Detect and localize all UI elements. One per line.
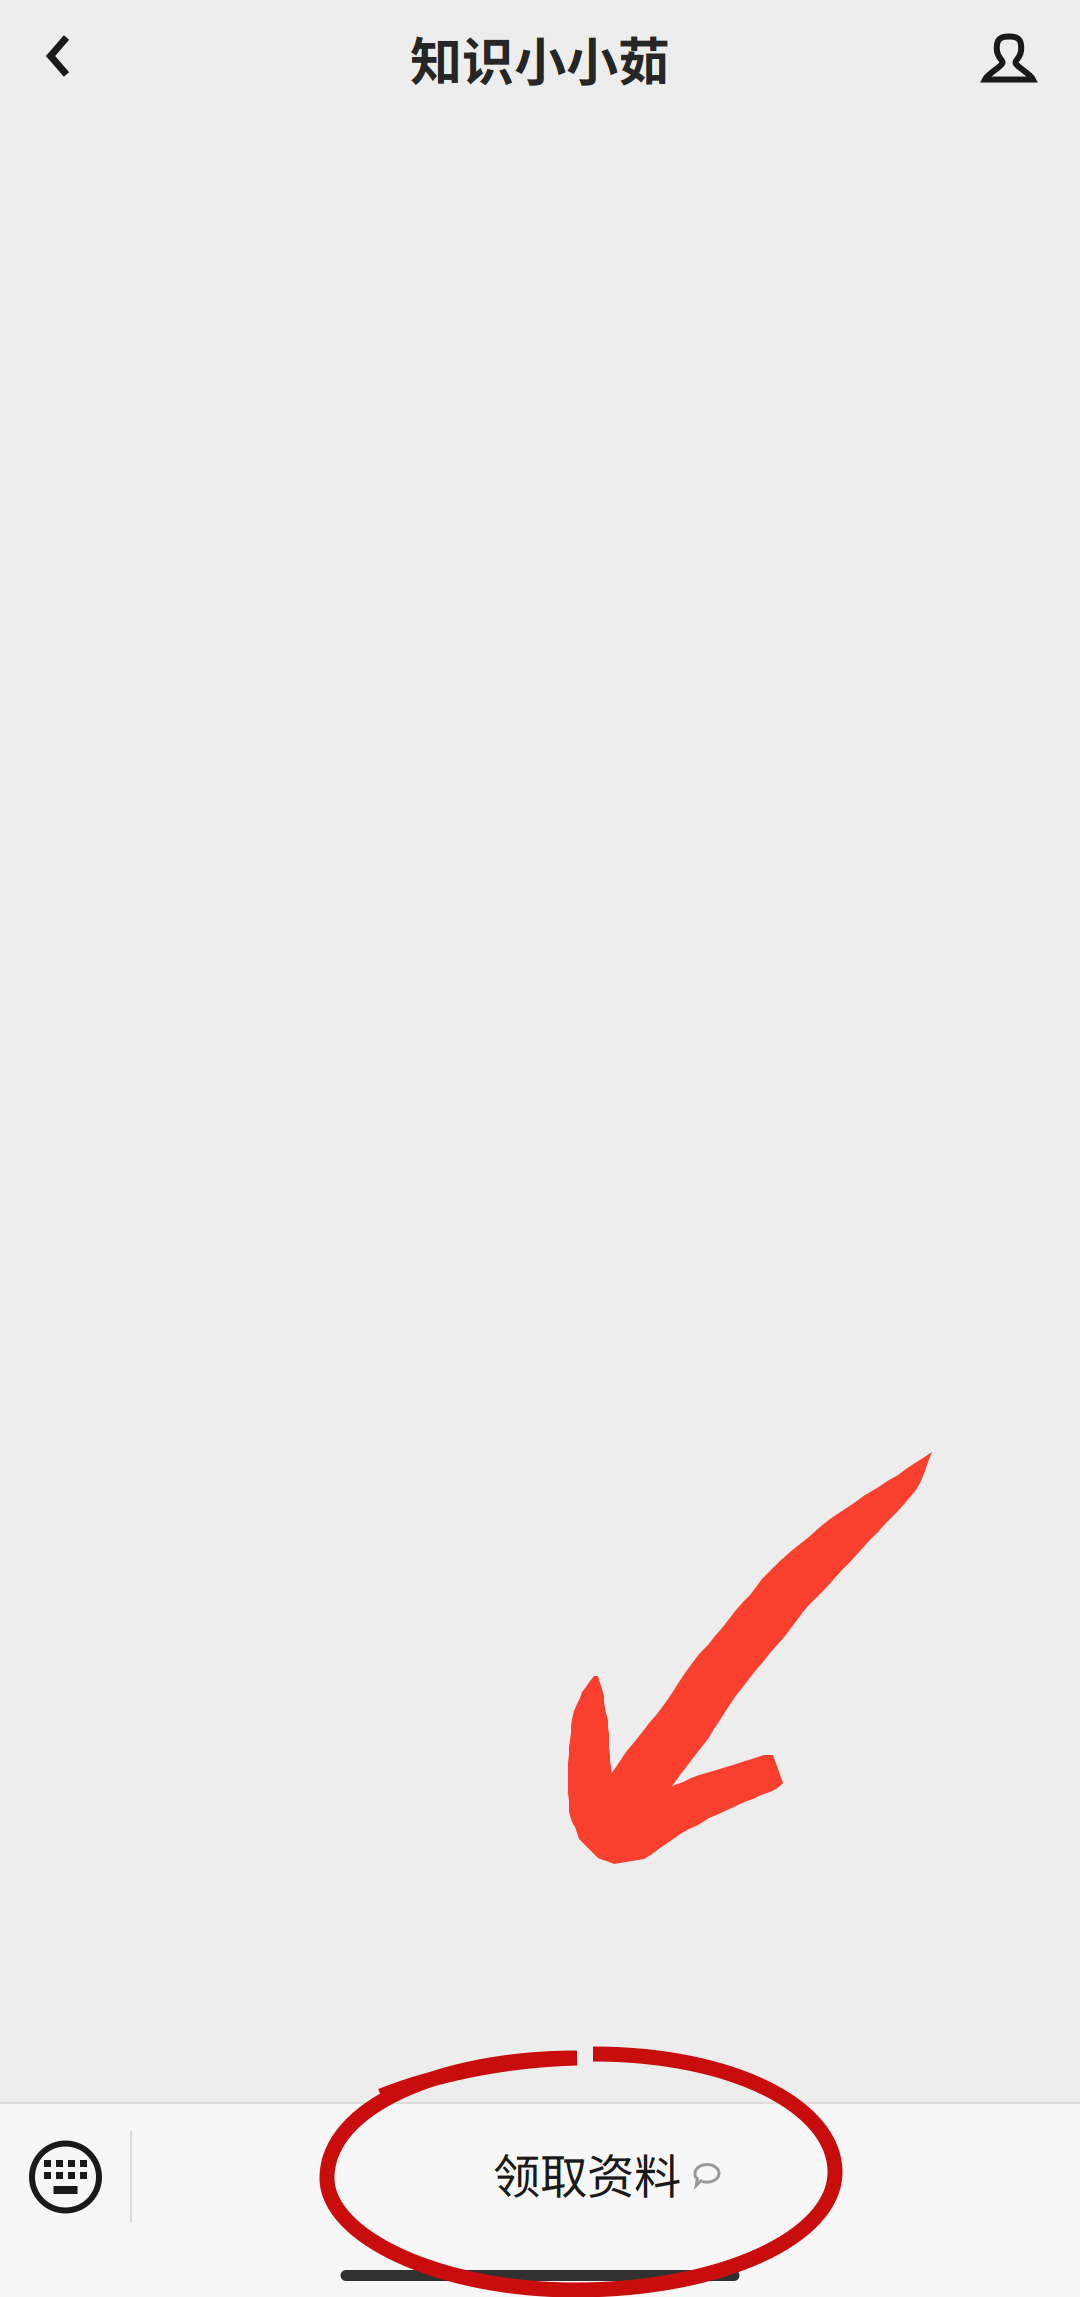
button[interactable]: Back <box>0 0 100 122</box>
staticText: 知识小小茹 <box>410 20 670 96</box>
button[interactable]: 领取资料 <box>132 2104 1080 2250</box>
button[interactable]: Contact profile <box>985 0 1080 122</box>
button[interactable]: Keyboard <box>0 2104 130 2250</box>
staticText: 领取资料 <box>493 2139 681 2207</box>
